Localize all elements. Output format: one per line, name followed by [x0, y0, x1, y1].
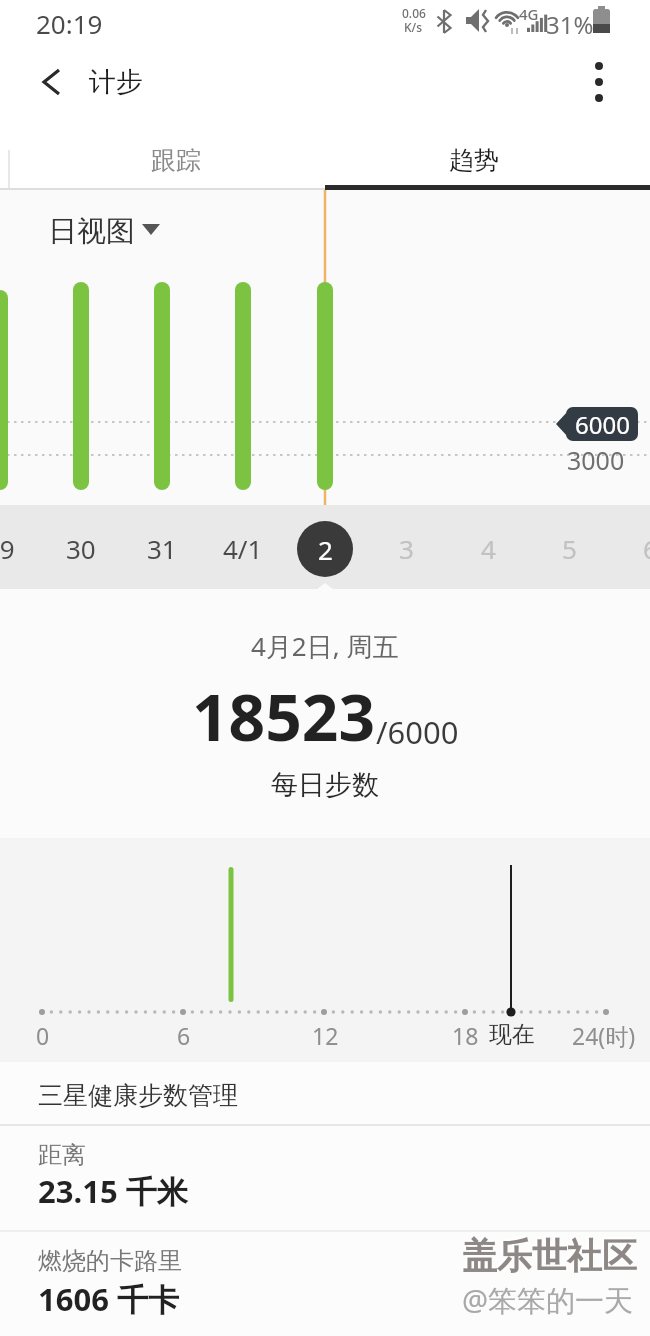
staticText: 燃烧的卡路里 [38, 1246, 182, 1276]
button[interactable]: 距离 [0, 1126, 650, 1230]
staticText: 18523 [192, 673, 376, 760]
staticText: 4G [519, 4, 539, 24]
staticText: 日视图 [48, 213, 135, 250]
staticText: 4/1 [223, 531, 263, 566]
staticText: 5 [562, 531, 577, 566]
staticText: 0.06 [402, 5, 426, 21]
staticText: 跟踪 [151, 145, 201, 176]
staticText: 6000 [575, 408, 630, 441]
staticText: 盖乐世社区 [462, 1234, 637, 1278]
staticText: 23.15 千米 [38, 1170, 188, 1212]
staticText: 29 [0, 531, 15, 566]
staticText: 距离 [38, 1140, 86, 1170]
staticText: 3000 [567, 443, 625, 473]
staticText: 3 [399, 531, 414, 566]
button[interactable] [325, 130, 650, 188]
staticText: 每日步数 [271, 768, 379, 802]
staticText: 18 [452, 1020, 479, 1051]
staticText: 30 [66, 531, 96, 566]
staticText: 2 [318, 532, 333, 567]
button[interactable] [575, 58, 623, 106]
button[interactable] [28, 58, 76, 106]
staticText: 0 [36, 1020, 50, 1051]
staticText: 1606 千卡 [38, 1278, 179, 1320]
staticText: 31 [147, 531, 177, 566]
staticText: 现在 [489, 1020, 535, 1049]
staticText: 12 [312, 1020, 339, 1051]
staticText: 三星健康步数管理 [38, 1080, 238, 1111]
staticText: 20:19 [36, 6, 103, 41]
staticText: /6000 [376, 711, 459, 753]
button[interactable] [0, 130, 325, 188]
staticText: 计步 [89, 65, 143, 99]
button[interactable] [0, 1062, 650, 1124]
staticText: K/s [404, 19, 423, 35]
button[interactable]: 2 [297, 521, 353, 577]
staticText: @笨笨的一天 [462, 1280, 634, 1320]
staticText: 4 [481, 531, 496, 566]
staticText: 4月2日, 周五 [251, 628, 399, 664]
staticText: 趋势 [449, 145, 499, 176]
staticText: 24(时) [572, 1020, 636, 1051]
button[interactable] [40, 205, 170, 251]
staticText: 31% [546, 8, 594, 41]
button[interactable]: 燃烧的卡路里 [0, 1232, 650, 1336]
staticText: 6 [177, 1020, 191, 1051]
staticText: 6 [643, 531, 650, 566]
